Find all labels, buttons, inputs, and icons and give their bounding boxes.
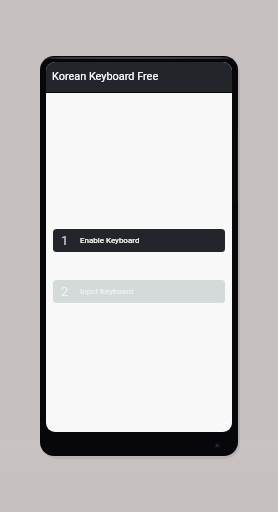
other: Camera: [215, 443, 220, 448]
button[interactable]: 2: [53, 280, 225, 303]
staticText: 2: [61, 284, 69, 299]
button[interactable]: Korean Keyboard Free: [46, 62, 232, 93]
staticText: Input Keyboard: [80, 287, 134, 296]
staticText: 1: [61, 233, 69, 248]
staticText: Korean Keyboard Free: [52, 70, 159, 83]
staticText: Enable Keyboard: [80, 236, 140, 245]
button[interactable]: 1: [53, 229, 225, 252]
